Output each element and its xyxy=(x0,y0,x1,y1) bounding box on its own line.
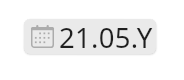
staticText: 21.05.Y xyxy=(59,19,153,54)
other: Pick a date xyxy=(31,25,54,48)
button[interactable]: Pick a date xyxy=(24,19,156,54)
